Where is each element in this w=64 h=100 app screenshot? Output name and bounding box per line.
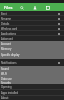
staticText: Applications — [1, 32, 16, 36]
staticText: Account — [1, 42, 11, 46]
staticText: Advanced — [1, 37, 13, 41]
staticText: Details — [1, 22, 10, 26]
staticText: Notifications — [1, 61, 17, 65]
button[interactable]: Security — [0, 81, 64, 84]
button[interactable]: Sound — [0, 66, 64, 71]
staticText: Files — [4, 5, 13, 10]
button[interactable]: Applications — [0, 31, 64, 36]
staticText: Security — [1, 81, 11, 84]
button[interactable]: Wi-Fi — [0, 71, 64, 76]
button[interactable]: Data use — [0, 76, 64, 81]
staticText: Opening — [1, 85, 12, 89]
button[interactable]: Notifications — [0, 59, 64, 66]
button[interactable]: About — [0, 96, 64, 100]
button[interactable]: Opening — [0, 84, 64, 90]
button[interactable]: Rename — [0, 16, 64, 21]
staticText: Memory — [1, 47, 12, 51]
staticText: Sound — [1, 67, 9, 71]
button[interactable]: Eject — [0, 11, 64, 16]
staticText: Wireless card — [1, 27, 18, 31]
button[interactable]: Account — [31, 4, 38, 11]
button[interactable]: Memory — [0, 46, 64, 51]
button[interactable]: Specific display — [0, 51, 64, 59]
staticText: Wi-Fi — [1, 72, 7, 76]
button[interactable]: Wireless card — [0, 26, 64, 31]
button[interactable]: Search — [18, 4, 25, 11]
button[interactable]: Details — [0, 21, 64, 26]
staticText: Eject — [1, 12, 7, 16]
button[interactable]: Apps installed — [0, 90, 64, 96]
staticText: Data use — [1, 77, 12, 81]
staticText: Apps installed — [1, 91, 19, 95]
staticText: Rename — [1, 17, 12, 21]
button[interactable]: Settings — [44, 4, 51, 11]
staticText: About — [1, 96, 9, 100]
button[interactable]: Account — [0, 41, 64, 46]
staticText: Specific display — [1, 53, 20, 57]
button[interactable]: Advanced — [0, 36, 64, 41]
